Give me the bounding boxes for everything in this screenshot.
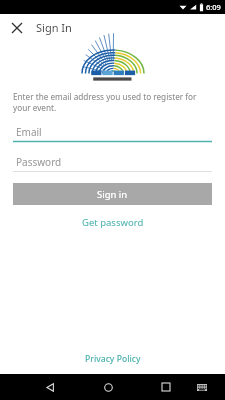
button[interactable]: Recents xyxy=(155,376,177,398)
staticText: 6:09 xyxy=(206,2,221,12)
button[interactable]: Close xyxy=(6,17,28,39)
staticText: Get password xyxy=(82,216,144,229)
staticText: Enter the email address you used to regi… xyxy=(13,91,212,114)
button[interactable]: Password xyxy=(13,153,212,173)
staticText: Email xyxy=(16,125,42,139)
button[interactable]: Get password xyxy=(74,213,152,232)
staticText: Sign in xyxy=(97,188,128,201)
staticText: Privacy Policy xyxy=(85,353,141,365)
staticText: Sign In xyxy=(36,20,72,35)
button[interactable]: Switch keyboard xyxy=(192,377,212,397)
button[interactable]: Sign in xyxy=(13,183,212,205)
staticText: Password xyxy=(16,155,62,169)
button[interactable]: Home xyxy=(97,376,119,398)
button[interactable]: Privacy Policy xyxy=(77,350,149,368)
button[interactable]: Back xyxy=(39,376,61,398)
button[interactable]: Email xyxy=(13,123,212,143)
